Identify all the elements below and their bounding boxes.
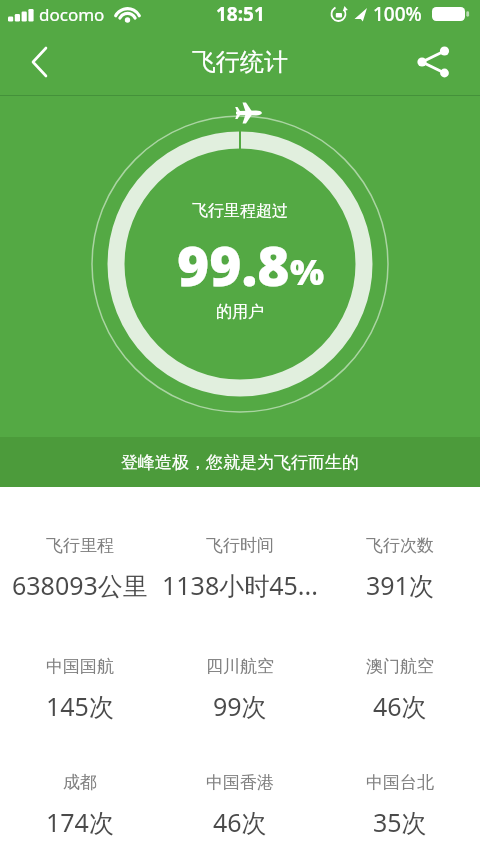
staticText: 成都 <box>63 772 97 793</box>
staticText: 中国香港 <box>206 772 274 793</box>
button[interactable] <box>405 34 461 90</box>
button[interactable]: 中国香港 <box>160 772 320 839</box>
staticText: docomo <box>39 3 105 26</box>
button[interactable]: 成都 <box>0 772 160 839</box>
staticText: 46次 <box>373 689 427 723</box>
staticText: 100% <box>373 1 422 27</box>
button[interactable] <box>12 34 68 90</box>
staticText: 145次 <box>46 689 114 723</box>
staticText: % <box>290 247 325 296</box>
staticText: 澳门航空 <box>366 656 434 677</box>
staticText: 登峰造极，您就是为飞行而生的 <box>121 452 359 473</box>
button[interactable]: 中国台北 <box>320 772 480 839</box>
staticText: 飞行时间 <box>206 535 274 556</box>
button[interactable]: 中国国航 <box>0 656 160 723</box>
staticText: 飞行里程超过 <box>192 201 288 221</box>
staticText: 中国台北 <box>366 772 434 793</box>
staticText: 99次 <box>213 689 267 723</box>
button[interactable]: 飞行时间 <box>160 535 320 602</box>
button[interactable]: 澳门航空 <box>320 656 480 723</box>
staticText: 四川航空 <box>206 656 274 677</box>
staticText: 中国国航 <box>46 656 114 677</box>
button[interactable]: 飞行里程 <box>0 535 160 602</box>
staticText: 174次 <box>46 805 114 839</box>
staticText: 35次 <box>373 805 427 839</box>
staticText: 飞行统计 <box>192 47 288 77</box>
staticText: 的用户 <box>216 302 264 322</box>
button[interactable]: 四川航空 <box>160 656 320 723</box>
staticText: 飞行里程 <box>46 535 114 556</box>
staticText: 18:51 <box>216 1 265 27</box>
staticText: 飞行次数 <box>366 535 434 556</box>
button[interactable]: 飞行次数 <box>320 535 480 602</box>
staticText: 638093公里 <box>12 568 148 602</box>
staticText: 46次 <box>213 805 267 839</box>
staticText: 99.8 <box>177 227 290 302</box>
staticText: 391次 <box>366 568 434 602</box>
staticText: 1138小时45... <box>162 568 318 602</box>
